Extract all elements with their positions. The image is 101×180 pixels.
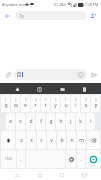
button[interactable]: Translate	[79, 84, 89, 94]
staticText: q	[4, 102, 8, 109]
button[interactable]: Backspace	[87, 131, 100, 149]
button[interactable]: Clipboard	[57, 84, 67, 94]
button[interactable]: Emoji	[77, 71, 84, 78]
staticText: a	[9, 118, 12, 125]
staticText: 5	[45, 98, 47, 102]
staticText: d	[29, 118, 33, 125]
button[interactable]: v	[47, 131, 56, 149]
button[interactable]: a	[6, 113, 15, 130]
button[interactable]: Send	[88, 69, 99, 80]
staticText: 7	[65, 98, 67, 102]
staticText: 4	[35, 98, 37, 102]
staticText: w	[14, 102, 18, 109]
button[interactable]: h	[56, 113, 65, 130]
button[interactable]: j	[66, 113, 75, 130]
button[interactable]: .	[77, 150, 85, 168]
button[interactable]: ?123	[1, 150, 16, 168]
staticText: k	[79, 118, 82, 125]
button[interactable]: Shift	[1, 131, 15, 149]
button[interactable]: c	[37, 131, 46, 149]
staticText: 6	[55, 98, 57, 102]
button[interactable]: 0	[91, 95, 100, 112]
staticText: 0	[95, 98, 97, 102]
button[interactable]: Attach	[2, 69, 13, 80]
button[interactable]: Home	[34, 169, 45, 180]
button[interactable]: Settings	[66, 150, 76, 168]
button[interactable]: Stickers	[34, 84, 44, 94]
button[interactable]: Back	[11, 169, 22, 180]
staticText: u	[64, 102, 68, 109]
button[interactable]: Theme	[12, 84, 22, 94]
button[interactable]: 6	[51, 95, 60, 112]
staticText: 1:28 PM	[85, 2, 99, 7]
button[interactable]: g	[46, 113, 55, 130]
button[interactable]: 8	[71, 95, 80, 112]
button[interactable]: Emoji	[14, 69, 87, 80]
staticText: r	[34, 102, 37, 109]
button[interactable]: Back	[3, 11, 13, 21]
button[interactable]: Recents	[56, 169, 67, 180]
staticText: m	[79, 137, 84, 144]
staticText: y	[54, 102, 57, 109]
button[interactable]: b	[57, 131, 66, 149]
button[interactable]: l	[86, 113, 95, 130]
staticText: l	[90, 118, 92, 125]
button[interactable]: m	[77, 131, 86, 149]
staticText: p	[94, 102, 98, 109]
staticText: n	[70, 137, 74, 144]
staticText: ,	[20, 156, 22, 163]
button[interactable]: 7	[61, 95, 70, 112]
staticText: x	[30, 137, 33, 144]
button[interactable]: 1	[1, 95, 10, 112]
staticText: t	[45, 102, 47, 109]
button[interactable]: Enter	[86, 150, 100, 168]
staticText: 3	[25, 98, 27, 102]
button[interactable]: 9	[81, 95, 90, 112]
staticText: To	[19, 13, 24, 19]
staticText: Airplane mode	[2, 2, 30, 7]
button[interactable]: k	[76, 113, 85, 130]
button[interactable]: f	[36, 113, 45, 130]
button[interactable]: z	[16, 131, 26, 149]
staticText: ?123	[5, 157, 12, 161]
staticText: 2	[15, 98, 17, 102]
button[interactable]: 5	[41, 95, 50, 112]
staticText: f	[40, 118, 42, 125]
button[interactable]: ,	[17, 150, 25, 168]
staticText: 1	[5, 98, 7, 102]
staticText: i	[75, 102, 77, 109]
button[interactable]: Add contact	[88, 11, 98, 21]
button[interactable]: s	[16, 113, 25, 130]
button[interactable]: n	[67, 131, 76, 149]
staticText: g	[49, 118, 53, 125]
staticText: z	[20, 137, 23, 144]
button[interactable]: 4	[31, 95, 40, 112]
staticText: j	[70, 118, 72, 125]
staticText: .	[80, 156, 82, 163]
staticText: h	[59, 118, 63, 125]
button[interactable]: 3	[21, 95, 30, 112]
button[interactable]: 2	[11, 95, 20, 112]
staticText: s	[19, 118, 22, 125]
staticText: 8	[75, 98, 77, 102]
button[interactable]: x	[27, 131, 36, 149]
staticText: c	[40, 137, 43, 144]
staticText: 61.2B/s	[54, 2, 67, 7]
staticText: o	[84, 102, 88, 109]
button[interactable]: To	[15, 11, 86, 20]
staticText: b	[60, 137, 64, 144]
button[interactable]: d	[26, 113, 35, 130]
staticText: v	[50, 137, 53, 144]
button[interactable]: Hide keyboard	[79, 169, 90, 180]
staticText: 9	[85, 98, 87, 102]
staticText: e	[24, 102, 27, 109]
